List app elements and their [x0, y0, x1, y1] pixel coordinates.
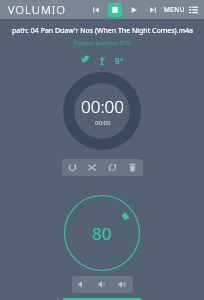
button[interactable]: Clear queue	[127, 162, 138, 173]
button[interactable]: Next	[146, 3, 160, 17]
button[interactable]: MENU	[164, 5, 198, 14]
button[interactable]: Facebook	[97, 54, 108, 65]
button[interactable]: Elapsed time	[63, 72, 141, 150]
staticText: Playlist position 3/15	[74, 39, 131, 46]
button[interactable]: Mute	[77, 279, 88, 290]
button[interactable]: Shuffle	[87, 162, 98, 173]
other: Menu	[189, 5, 198, 14]
staticText: f	[100, 54, 105, 65]
button[interactable]: path: 04 Pan Ddaw'r Nos (When The Night …	[6, 26, 198, 46]
staticText: g+	[115, 55, 124, 65]
button[interactable]: Previous	[89, 3, 103, 17]
button[interactable]: Twitter	[80, 54, 91, 65]
button[interactable]: VOLUMIO	[8, 2, 67, 17]
staticText: 80	[92, 222, 112, 245]
button[interactable]: Volume 80	[64, 195, 140, 271]
button[interactable]: Stop	[108, 3, 122, 17]
button[interactable]: Repeat one	[67, 162, 78, 173]
staticText: MENU	[164, 5, 185, 14]
button[interactable]: Volume down	[97, 279, 108, 290]
button[interactable]: Volume up	[117, 279, 128, 290]
staticText: path: 04 Pan Ddaw'r Nos (When The Night …	[12, 26, 193, 36]
button[interactable]: Google Plus	[114, 54, 125, 65]
staticText: 00:00	[81, 95, 124, 118]
button[interactable]: Repeat	[107, 162, 118, 173]
button[interactable]: Play	[127, 3, 141, 17]
staticText: 00:00	[95, 119, 111, 127]
